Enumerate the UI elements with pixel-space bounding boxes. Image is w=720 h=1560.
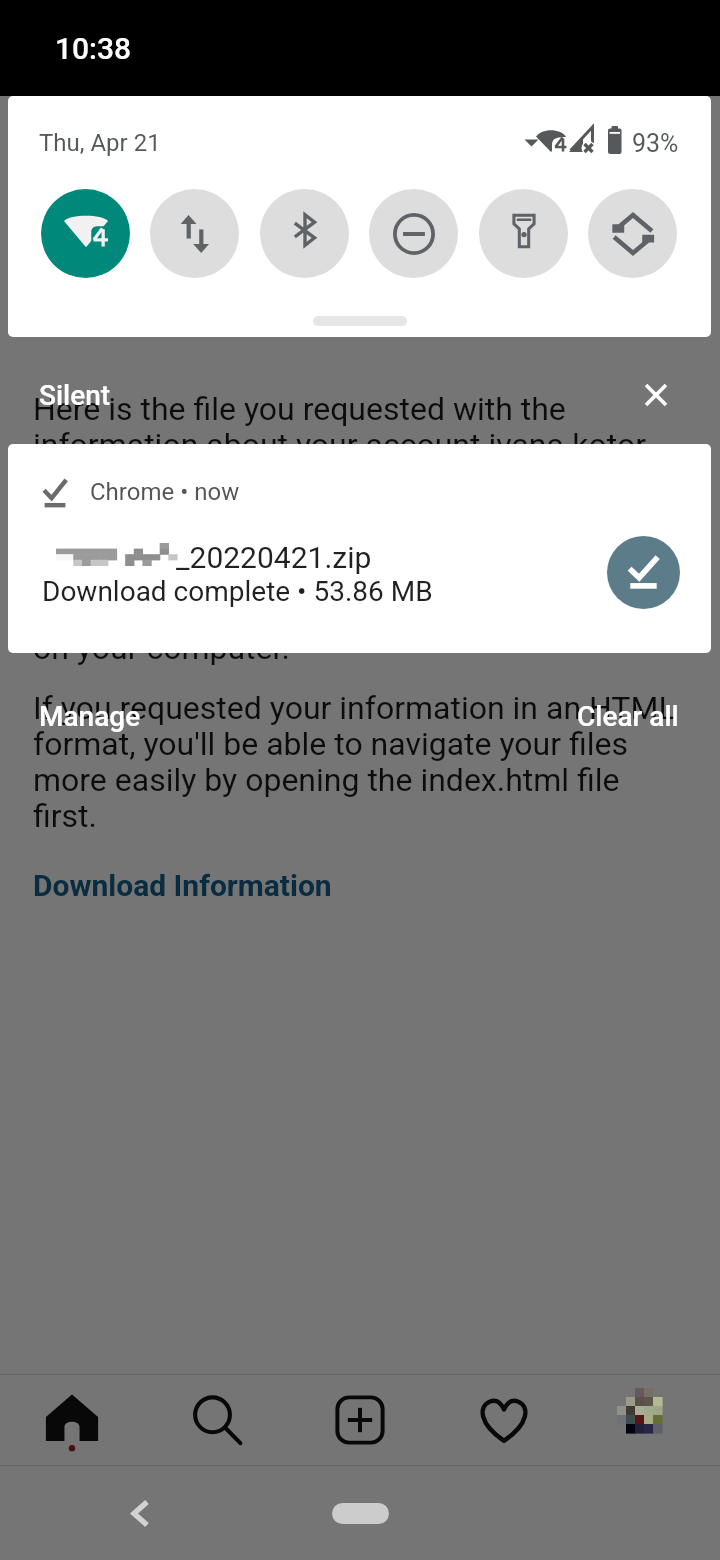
staticText: If you requested your information in an …: [33, 689, 676, 727]
staticText: on your computer.: [33, 629, 290, 667]
staticText: _20220421.zip: [176, 540, 372, 575]
staticText: 93%: [632, 129, 679, 158]
button[interactable]: Silent: [39, 379, 111, 412]
button[interactable]: Activity: [432, 1375, 576, 1465]
staticText: Here is the file you requested with the: [33, 390, 566, 428]
button[interactable]: Clear all: [577, 700, 679, 733]
staticText: Chrome • now: [90, 478, 240, 506]
staticText: The file is a ZIP file that you can unzi…: [33, 462, 569, 500]
button[interactable]: Bluetooth: [260, 189, 349, 278]
button[interactable]: Download Information: [33, 868, 332, 903]
button[interactable]: Chrome • now: [8, 444, 711, 653]
button[interactable]: Home: [0, 1375, 144, 1465]
staticText: Download Information: [33, 868, 332, 903]
button[interactable]: Thu, Apr 21: [39, 129, 161, 157]
button[interactable]: Clear silent notifications: [626, 365, 685, 424]
button[interactable]: Flashlight: [479, 189, 568, 278]
button[interactable]: Profile: [617, 1388, 671, 1445]
staticText: 10:38: [55, 31, 132, 66]
button[interactable]: New post: [288, 1375, 432, 1465]
staticText: Clear all: [577, 700, 679, 733]
staticText: more easily by opening the index.html fi…: [33, 761, 620, 799]
staticText: first.: [33, 797, 97, 835]
staticText: format, you'll be able to navigate your …: [33, 725, 629, 763]
staticText: Manage: [39, 700, 141, 733]
staticText: Download complete • 53.86 MB: [42, 575, 433, 608]
button[interactable]: Home: [290, 1485, 430, 1541]
button[interactable]: Do not disturb: [369, 189, 458, 278]
button[interactable]: Open download: [607, 536, 680, 609]
staticText: information about your account ivana.kot…: [33, 426, 653, 464]
button[interactable]: Auto-rotate: [588, 189, 677, 278]
button[interactable]: Profile: [576, 1375, 720, 1465]
button[interactable]: Wi-Fi: [41, 189, 130, 278]
button[interactable]: Back: [108, 1481, 172, 1545]
button[interactable]: Mobile data: [150, 189, 239, 278]
button[interactable]: Search: [144, 1375, 288, 1465]
button[interactable]: Manage: [39, 700, 141, 733]
